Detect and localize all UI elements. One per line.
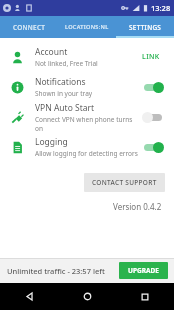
button[interactable]: Recent apps — [116, 283, 174, 310]
button[interactable]: Toggle on — [142, 81, 164, 94]
staticText: LOCATIONS:NL — [65, 23, 109, 31]
button[interactable]: Notifications — [0, 72, 174, 102]
staticText: Notifications — [35, 76, 86, 88]
staticText: CONTACT SUPPORT — [92, 178, 157, 187]
staticText: SETTINGS — [129, 23, 162, 32]
button[interactable]: Toggle on — [142, 141, 164, 154]
staticText: CONNECT — [13, 23, 46, 32]
staticText: Shown in your tray — [35, 89, 93, 98]
button[interactable]: Toggle off — [142, 111, 164, 124]
staticText: Version 0.4.2 — [113, 201, 162, 212]
button[interactable]: LOCATIONS:NL — [58, 16, 116, 38]
button[interactable]: Logging — [0, 132, 174, 162]
button[interactable]: CONTACT SUPPORT — [84, 173, 165, 192]
staticText: Unlimited traffic - 23:57 left — [7, 266, 105, 276]
button[interactable]: UPGRADE — [119, 262, 168, 279]
button[interactable]: SETTINGS — [116, 16, 174, 38]
button[interactable]: Back — [0, 283, 58, 310]
staticText: Allow logging for detecting errors — [35, 149, 138, 158]
button[interactable]: VPN Auto Start — [0, 102, 174, 132]
staticText: Account — [35, 46, 68, 58]
staticText: Connect VPN when phone turns on — [35, 115, 138, 132]
staticText: 13:28 — [151, 3, 171, 13]
button[interactable]: Home — [58, 283, 116, 310]
staticText: LINK — [142, 52, 160, 62]
button[interactable]: LINK — [138, 49, 164, 65]
staticText: VPN Auto Start — [35, 102, 95, 114]
staticText: UPGRADE — [128, 266, 159, 275]
staticText: Logging — [35, 136, 68, 148]
button[interactable]: CONNECT — [0, 16, 58, 38]
button[interactable]: Account — [0, 42, 174, 72]
staticText: Not linked, Free Trial — [35, 59, 98, 68]
